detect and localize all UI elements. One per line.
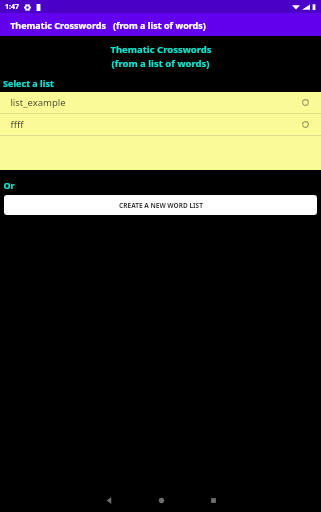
staticText: (from a list of words) [111, 57, 210, 70]
staticText: 1:47 [5, 2, 19, 12]
button[interactable]: list_example [0, 92, 321, 113]
staticText: ffff [10, 118, 24, 131]
staticText: Or [3, 179, 15, 191]
button[interactable]: Home [144, 488, 178, 512]
staticText: Thematic Crosswords [110, 43, 212, 56]
staticText: Thematic Crosswords (from a list of word… [10, 19, 206, 31]
button[interactable]: Back [92, 488, 126, 512]
staticText: Select a list [3, 77, 54, 89]
button[interactable]: CREATE A NEW WORD LIST [4, 195, 317, 215]
staticText: list_example [10, 96, 66, 109]
staticText: CREATE A NEW WORD LIST [119, 201, 203, 210]
button[interactable]: ffff [0, 114, 321, 135]
button[interactable]: Recent apps [196, 488, 230, 512]
